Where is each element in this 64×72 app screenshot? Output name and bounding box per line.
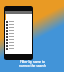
button[interactable]	[5, 47, 32, 50]
button[interactable]	[5, 26, 32, 29]
button[interactable]	[5, 20, 32, 23]
staticText: narrow the search	[19, 64, 46, 68]
staticText: Filter by name to	[20, 60, 45, 64]
button[interactable]	[5, 32, 32, 35]
button[interactable]	[5, 44, 32, 47]
button[interactable]	[5, 38, 32, 41]
button[interactable]	[5, 35, 32, 38]
button[interactable]	[5, 29, 32, 32]
button[interactable]	[5, 23, 32, 26]
button[interactable]	[5, 41, 32, 44]
